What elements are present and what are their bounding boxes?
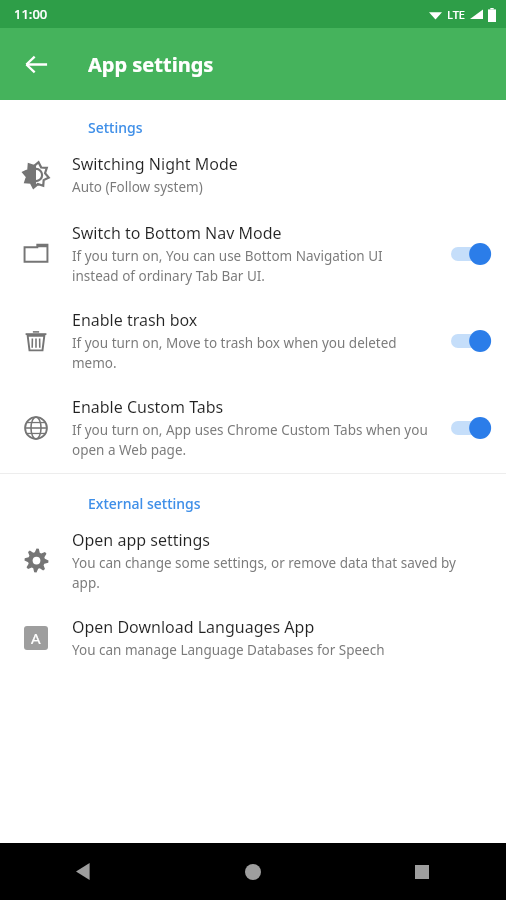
staticText: Open Download Languages App [72, 616, 315, 638]
staticText: External settings [88, 494, 201, 513]
button[interactable]: Switch to Bottom Nav Mode [0, 210, 506, 297]
staticText: Switch to Bottom Nav Mode [72, 222, 282, 244]
button[interactable]: Enable trash box [0, 297, 506, 384]
staticText: You can change some settings, or remove … [72, 554, 486, 592]
staticText: Open app settings [72, 529, 210, 551]
button[interactable]: Open app settings [0, 513, 506, 604]
staticText: Enable trash box [72, 309, 198, 331]
button[interactable]: Toggle Enable Custom Tabs [440, 408, 506, 448]
staticText: Enable Custom Tabs [72, 396, 224, 418]
button[interactable]: Switching Night Mode [0, 137, 506, 210]
staticText: If you turn on, App uses Chrome Custom T… [72, 421, 428, 459]
button[interactable]: Toggle Switch to Bottom Nav Mode [440, 234, 506, 274]
staticText: Switching Night Mode [72, 153, 238, 175]
button[interactable]: Enable Custom Tabs [0, 384, 506, 473]
staticText: App settings [88, 51, 214, 78]
staticText: LTE [447, 7, 465, 22]
staticText: If you turn on, Move to trash box when y… [72, 334, 428, 372]
staticText: 11:00 [14, 5, 48, 23]
button[interactable]: Home [168, 843, 337, 900]
button[interactable]: Back [0, 843, 168, 900]
staticText: Auto (Follow system) [72, 178, 203, 196]
staticText: If you turn on, You can use Bottom Navig… [72, 247, 428, 285]
button[interactable]: A [0, 604, 506, 671]
button[interactable]: Back [12, 40, 60, 88]
staticText: Settings [88, 118, 143, 137]
staticText: You can manage Language Databases for Sp… [72, 641, 385, 659]
button[interactable]: Toggle Enable trash box [440, 321, 506, 361]
staticText: A [31, 628, 41, 648]
button[interactable]: Recent apps [337, 843, 506, 900]
